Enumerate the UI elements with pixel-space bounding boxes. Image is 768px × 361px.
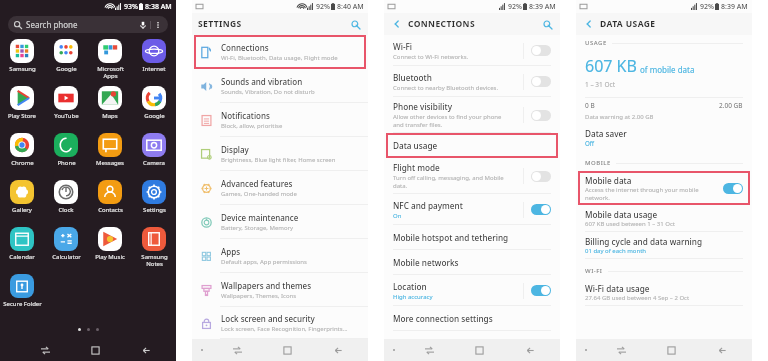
button[interactable]: Phone: [44, 130, 88, 167]
button[interactable]: Samsung Notes: [132, 224, 176, 268]
button[interactable]: Secure Folder: [0, 271, 44, 308]
button[interactable]: Mobile hotspot and tethering: [384, 225, 560, 250]
button[interactable]: More connection settings: [384, 306, 560, 331]
staticText: Mobile hotspot and tethering: [393, 232, 509, 243]
button[interactable]: Recents: [212, 339, 262, 361]
staticText: Notifications: [221, 110, 270, 121]
button[interactable]: Wi-Fi data usage: [576, 279, 752, 306]
staticText: data.: [393, 182, 408, 190]
staticText: NFC and payment: [393, 200, 463, 211]
button[interactable]: On: [723, 183, 743, 194]
staticText: Lock screen and security: [221, 313, 315, 324]
button[interactable]: Off: [531, 171, 551, 182]
staticText: Chrome: [11, 159, 34, 167]
button[interactable]: Clock: [44, 177, 88, 214]
staticText: Data warning at 2.00 GB: [585, 113, 654, 121]
button[interactable]: Messages: [88, 130, 132, 167]
staticText: Settings: [143, 206, 166, 214]
button[interactable]: Location: [384, 275, 560, 306]
button[interactable]: Mobile networks: [384, 250, 560, 275]
staticText: DATA USAGE: [600, 18, 656, 30]
button[interactable]: Google: [44, 36, 88, 73]
button[interactable]: Microsoft Apps: [88, 36, 132, 80]
staticText: 93%: [124, 2, 138, 12]
button[interactable]: Search phone: [8, 16, 168, 33]
button[interactable]: Billing cycle and data warning: [576, 232, 752, 259]
staticText: Battery, Storage, Memory: [221, 224, 294, 232]
button[interactable]: Phone visibility: [384, 97, 560, 133]
staticText: Google: [144, 112, 165, 120]
button[interactable]: On: [531, 204, 551, 215]
staticText: Mobile networks: [393, 257, 459, 268]
button[interactable]: Off: [531, 110, 551, 121]
button[interactable]: Connections: [192, 35, 368, 69]
button[interactable]: Back: [390, 17, 404, 31]
button[interactable]: Data usage: [384, 133, 560, 158]
button[interactable]: Home: [646, 339, 697, 361]
button[interactable]: Search: [348, 17, 362, 31]
staticText: Access the internet through your mobile: [585, 186, 699, 194]
button[interactable]: Chrome: [0, 130, 44, 167]
button[interactable]: Calculator: [44, 224, 88, 261]
button[interactable]: On: [531, 285, 551, 296]
staticText: Flight mode: [393, 162, 440, 173]
button[interactable]: Back: [505, 339, 556, 361]
staticText: 1 – 31 Oct: [585, 80, 616, 89]
button[interactable]: Gallery: [0, 177, 44, 214]
staticText: SETTINGS: [198, 18, 242, 30]
staticText: Samsung: [9, 65, 36, 73]
button[interactable]: Play Music: [88, 224, 132, 261]
button[interactable]: Contacts: [88, 177, 132, 214]
button[interactable]: Off: [531, 45, 551, 56]
button[interactable]: Home: [262, 339, 313, 361]
button[interactable]: Calendar: [0, 224, 44, 261]
button[interactable]: Back: [697, 339, 748, 361]
button[interactable]: Advanced features: [192, 171, 368, 205]
button[interactable]: Home: [70, 339, 121, 361]
button[interactable]: Back: [121, 339, 172, 361]
staticText: Brightness, Blue light filter, Home scre…: [221, 156, 336, 164]
button[interactable]: Display: [192, 137, 368, 171]
button[interactable]: Recents: [20, 339, 70, 361]
button[interactable]: Back: [582, 17, 596, 31]
staticText: Contacts: [98, 206, 123, 214]
button[interactable]: Off: [531, 76, 551, 87]
staticText: 92%: [316, 2, 330, 12]
button[interactable]: Samsung: [0, 36, 44, 73]
button[interactable]: Lock screen and security: [192, 307, 368, 339]
staticText: Calculator: [52, 253, 81, 261]
button[interactable]: Recents: [596, 339, 646, 361]
staticText: Maps: [102, 112, 118, 120]
button[interactable]: Wallpapers and themes: [192, 273, 368, 307]
staticText: Wallpapers and themes: [221, 280, 312, 291]
button[interactable]: Notifications: [192, 103, 368, 137]
button[interactable]: Data saver: [576, 126, 752, 149]
button[interactable]: YouTube: [44, 83, 88, 120]
staticText: Turn off calling, messaging, and Mobile: [393, 174, 504, 182]
button[interactable]: Flight mode: [384, 158, 560, 194]
button[interactable]: Home: [454, 339, 505, 361]
button[interactable]: Camera: [132, 130, 176, 167]
button[interactable]: Mobile data usage: [576, 205, 752, 232]
button[interactable]: Mobile data: [576, 171, 752, 205]
button[interactable]: Google: [132, 83, 176, 120]
button[interactable]: Recents: [404, 339, 454, 361]
button[interactable]: NFC and payment: [384, 194, 560, 225]
button[interactable]: Settings: [132, 177, 176, 214]
button[interactable]: Wi-Fi: [384, 35, 560, 66]
staticText: Connect to Wi-Fi networks.: [393, 53, 469, 61]
staticText: Sounds, Vibration, Do not disturb: [221, 88, 315, 96]
button[interactable]: Device maintenance: [192, 205, 368, 239]
staticText: Wi-Fi, Bluetooth, Data usage, Flight mod…: [221, 54, 338, 62]
button[interactable]: Sounds and vibration: [192, 69, 368, 103]
button[interactable]: Search: [540, 17, 554, 31]
staticText: Lock screen, Face Recognition, Fingerpri…: [221, 325, 348, 333]
button[interactable]: Maps: [88, 83, 132, 120]
button[interactable]: Internet: [132, 36, 176, 73]
staticText: Block, allow, prioritise: [221, 122, 283, 130]
button[interactable]: Back: [313, 339, 364, 361]
button[interactable]: Bluetooth: [384, 66, 560, 97]
button[interactable]: Apps: [192, 239, 368, 273]
staticText: High accuracy: [393, 293, 433, 301]
button[interactable]: Play Store: [0, 83, 44, 120]
